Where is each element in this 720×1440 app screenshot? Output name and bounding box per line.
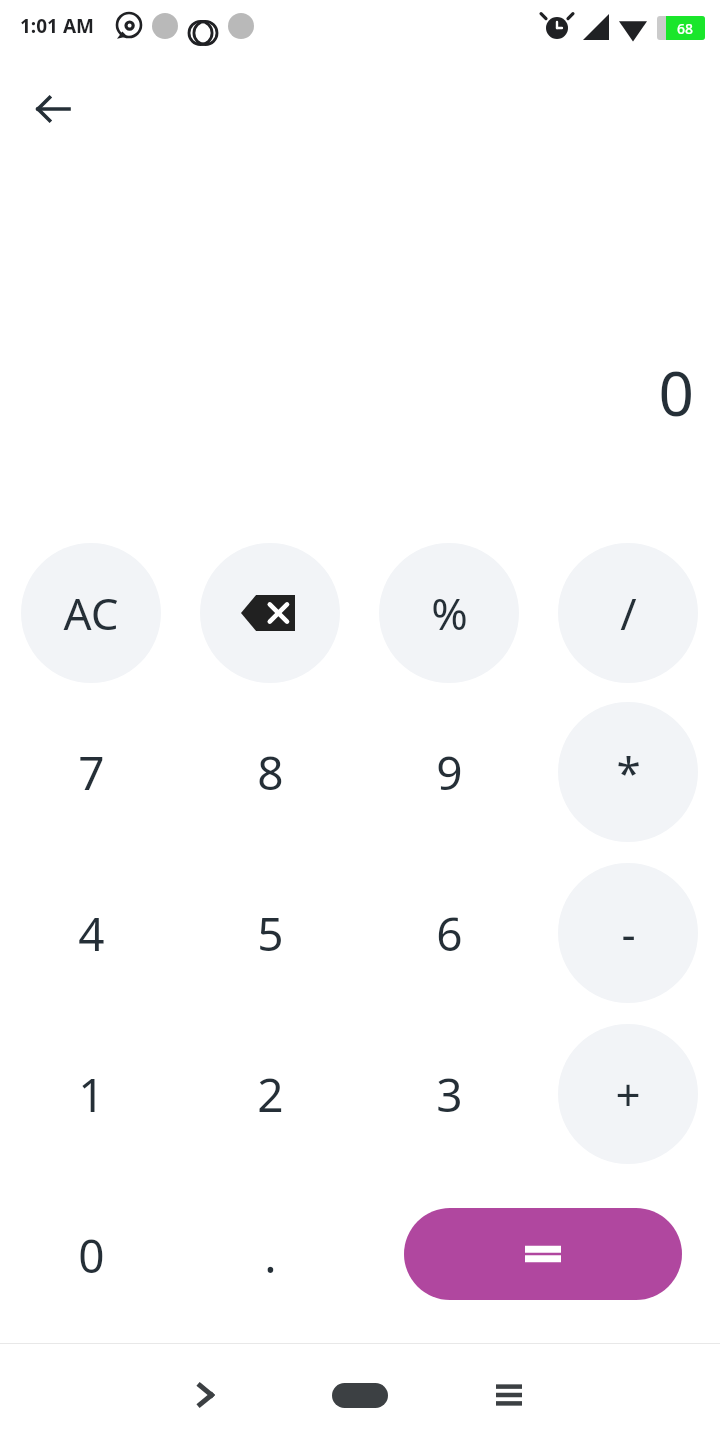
staticText: 3 — [436, 1063, 463, 1126]
staticText: 1 — [78, 1063, 105, 1126]
staticText: % — [431, 583, 468, 643]
button[interactable]: 4 — [21, 863, 161, 1003]
staticText: 68 — [677, 19, 694, 38]
button[interactable]: 8 — [200, 702, 340, 842]
button[interactable]: 3 — [379, 1024, 519, 1164]
staticText: 8 — [257, 741, 284, 804]
button[interactable]: 6 — [379, 863, 519, 1003]
button[interactable]: Back — [22, 78, 84, 140]
staticText: 4 — [78, 902, 105, 965]
button[interactable]: Home — [325, 1360, 395, 1430]
button[interactable]: Backspace — [200, 543, 340, 683]
staticText: . — [264, 1224, 277, 1287]
button[interactable]: 7 — [21, 702, 161, 842]
button[interactable]: * — [558, 702, 698, 842]
staticText: 5 — [257, 902, 284, 965]
staticText: AC — [63, 583, 119, 643]
staticText: / — [620, 583, 637, 643]
staticText: - — [621, 903, 636, 963]
button[interactable]: % — [379, 543, 519, 683]
button[interactable]: + — [558, 1024, 698, 1164]
button[interactable]: / — [558, 543, 698, 683]
button[interactable]: 1 — [21, 1024, 161, 1164]
button[interactable]: Equals — [404, 1208, 682, 1300]
button[interactable]: Back — [175, 1360, 245, 1430]
button[interactable]: 5 — [200, 863, 340, 1003]
staticText: 0 — [78, 1224, 105, 1287]
staticText: 0 — [0, 350, 694, 434]
button[interactable]: . — [200, 1185, 340, 1325]
button[interactable]: - — [558, 863, 698, 1003]
button[interactable]: 0 — [21, 1185, 161, 1325]
staticText: 2 — [257, 1063, 284, 1126]
staticText: 6 — [436, 902, 463, 965]
button[interactable]: AC — [21, 543, 161, 683]
button[interactable]: Recents — [474, 1360, 544, 1430]
button[interactable]: 2 — [200, 1024, 340, 1164]
staticText: * — [616, 742, 641, 802]
button[interactable]: 9 — [379, 702, 519, 842]
staticText: + — [615, 1064, 641, 1124]
staticText: 1:01 AM — [20, 13, 94, 39]
staticText: 7 — [78, 741, 105, 804]
staticText: 9 — [436, 741, 463, 804]
